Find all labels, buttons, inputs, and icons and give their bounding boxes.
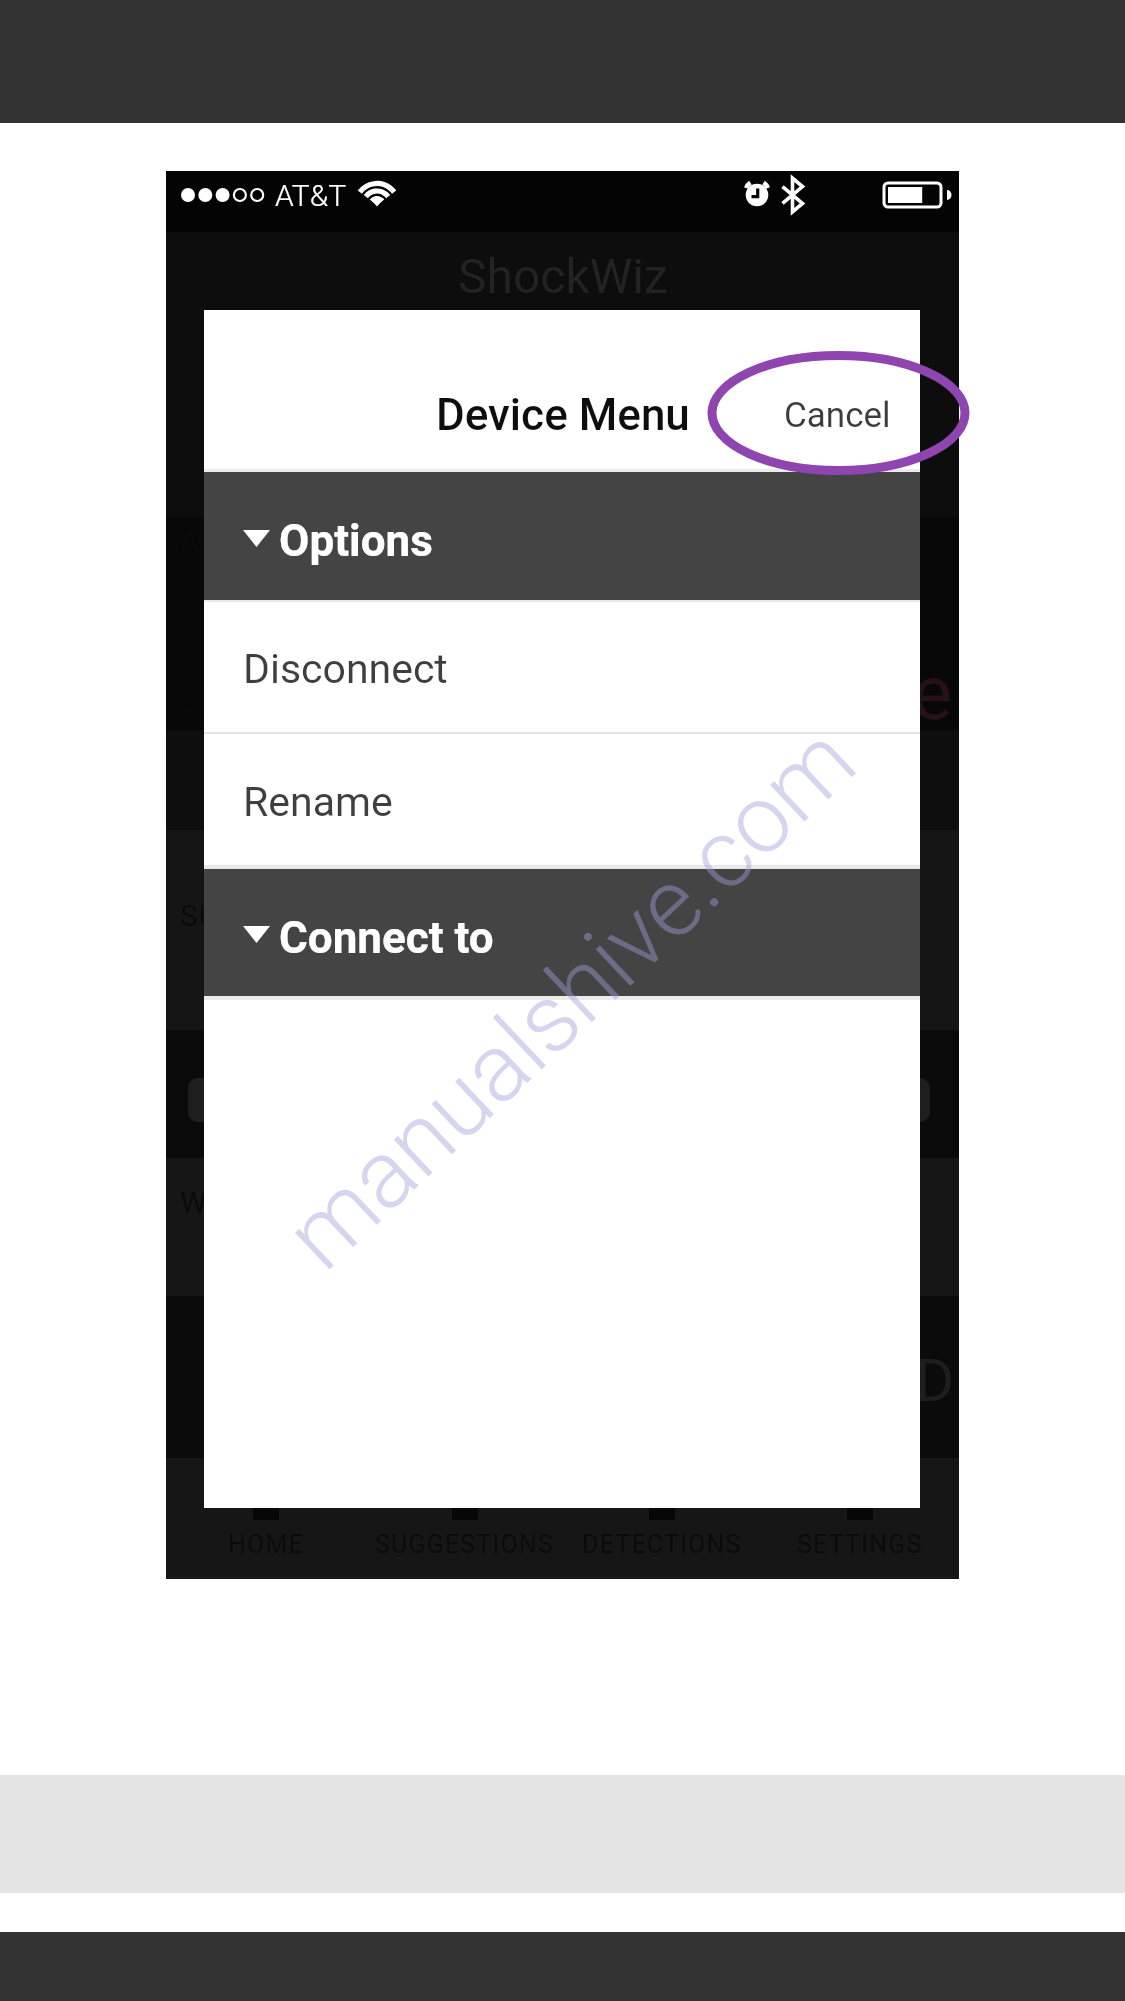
staticText: DETECTIONS xyxy=(582,1530,742,1559)
staticText: SETTINGS xyxy=(797,1530,923,1559)
staticText: SUGGESTIONS xyxy=(375,1530,554,1559)
staticText: Device Menu xyxy=(436,389,690,441)
staticText: Disconnect xyxy=(243,645,448,693)
staticText: manualshive.com xyxy=(264,704,877,1291)
staticText: ShockWiz xyxy=(458,248,668,304)
staticText: AIR SPRING xyxy=(180,524,349,559)
button[interactable]: HOME xyxy=(166,1458,365,1579)
button[interactable]: Cancel xyxy=(755,360,919,470)
staticText: AT&T xyxy=(275,178,347,213)
staticText: D xyxy=(915,1345,955,1415)
staticText: Connect to xyxy=(279,912,494,964)
staticText: e xyxy=(912,648,953,737)
staticText: Cancel xyxy=(784,395,891,436)
button[interactable]: Connect to xyxy=(204,869,920,996)
staticText: HOME xyxy=(228,1530,304,1559)
button[interactable]: Rename xyxy=(204,734,920,865)
button[interactable]: SUGGESTIONS xyxy=(365,1458,563,1579)
staticText: SETUP xyxy=(180,1040,277,1075)
staticText: SUSPENSION xyxy=(180,898,371,933)
other: Status bar xyxy=(166,171,959,232)
staticText: Options xyxy=(279,515,433,567)
staticText: Rename xyxy=(243,778,393,826)
staticText: SPRING RATE xyxy=(180,683,375,718)
button[interactable]: Disconnect xyxy=(204,602,920,732)
button[interactable]: SETTINGS xyxy=(761,1458,959,1579)
button[interactable]: DETECTIONS xyxy=(563,1458,761,1579)
staticText: WHEEL xyxy=(180,1185,284,1220)
button[interactable]: Options xyxy=(204,472,920,600)
